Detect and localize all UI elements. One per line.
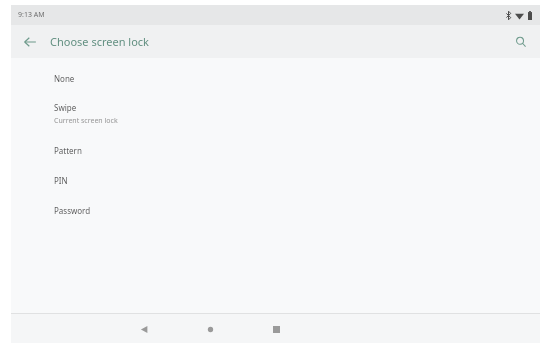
staticText: Password xyxy=(54,205,91,216)
staticText: Choose screen lock xyxy=(50,34,149,49)
button[interactable]: Password xyxy=(11,195,540,225)
button[interactable]: Recent apps xyxy=(263,316,289,342)
staticText: PIN xyxy=(54,175,68,186)
staticText: Pattern xyxy=(54,145,82,156)
button[interactable]: None xyxy=(11,63,540,93)
button[interactable]: Search xyxy=(508,29,534,55)
button[interactable]: PIN xyxy=(11,165,540,195)
button[interactable]: Pattern xyxy=(11,135,540,165)
staticText: Current screen lock xyxy=(54,116,118,126)
button[interactable]: Swipe xyxy=(11,93,540,135)
staticText: None xyxy=(54,73,75,84)
staticText: Swipe xyxy=(54,102,77,113)
button[interactable]: Back xyxy=(17,29,43,55)
staticText: 9:13 AM xyxy=(18,10,45,20)
button[interactable]: Home xyxy=(197,316,223,342)
button[interactable]: Back xyxy=(131,316,157,342)
